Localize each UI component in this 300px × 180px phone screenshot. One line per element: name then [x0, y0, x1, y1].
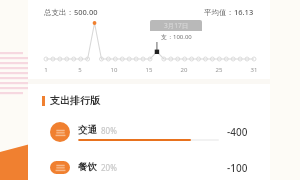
staticText: 10 [108, 66, 120, 74]
staticText: 20% [101, 162, 117, 173]
staticText: 支：100.00 [161, 33, 192, 41]
staticText: 支出排行版 [50, 94, 100, 107]
staticText: 3月17日 [164, 21, 189, 30]
staticText: 15 [143, 66, 155, 74]
button[interactable]: 交通 [42, 116, 256, 148]
staticText: 平均值：16.13 [204, 7, 254, 17]
staticText: 交通 [78, 124, 97, 136]
staticText: 总支出：500.00 [44, 7, 98, 17]
staticText: 31 [248, 66, 260, 74]
button[interactable]: 餐饮 [42, 155, 256, 180]
staticText: -400 [227, 125, 248, 139]
staticText: 80% [101, 125, 117, 136]
staticText: -100 [227, 161, 248, 174]
staticText: 20 [178, 66, 190, 74]
staticText: 1 [40, 66, 52, 74]
staticText: 餐饮 [78, 161, 97, 173]
staticText: 25 [213, 66, 225, 74]
staticText: 5 [74, 66, 86, 74]
